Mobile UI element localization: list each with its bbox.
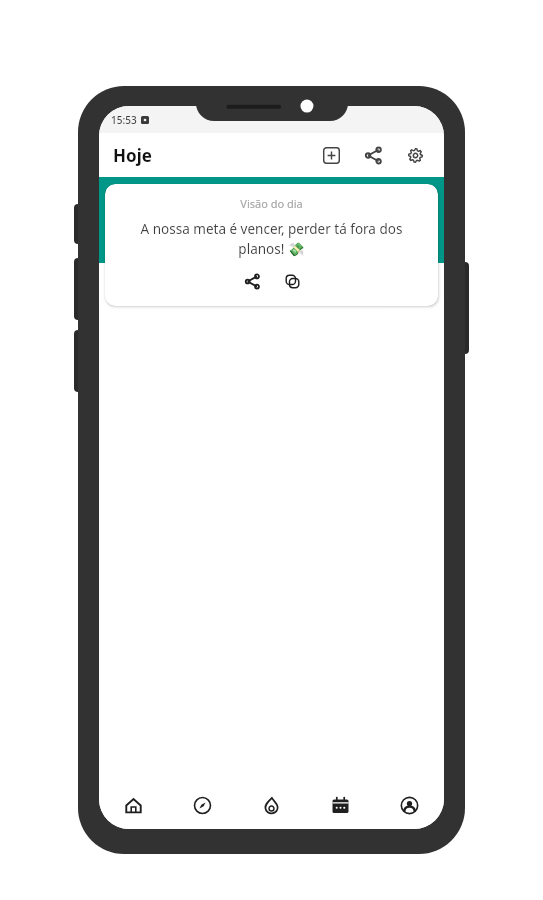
- button[interactable]: Home: [99, 781, 168, 829]
- button[interactable]: Share quote: [239, 268, 265, 294]
- button[interactable]: Settings: [400, 140, 430, 170]
- staticText: A nossa meta é vencer, perder tá fora do…: [119, 220, 424, 258]
- staticText: 15:53: [111, 113, 137, 127]
- button[interactable]: Add: [316, 140, 346, 170]
- button[interactable]: Explore: [168, 781, 237, 829]
- button[interactable]: Profile: [375, 781, 444, 829]
- button[interactable]: Calendar: [306, 781, 375, 829]
- button[interactable]: Share: [358, 140, 388, 170]
- button[interactable]: Copy quote: [279, 268, 305, 294]
- staticText: Visão do dia: [240, 196, 303, 211]
- staticText: Hoje: [113, 144, 152, 167]
- button[interactable]: Visão do dia: [105, 184, 438, 306]
- button[interactable]: Trending: [237, 781, 306, 829]
